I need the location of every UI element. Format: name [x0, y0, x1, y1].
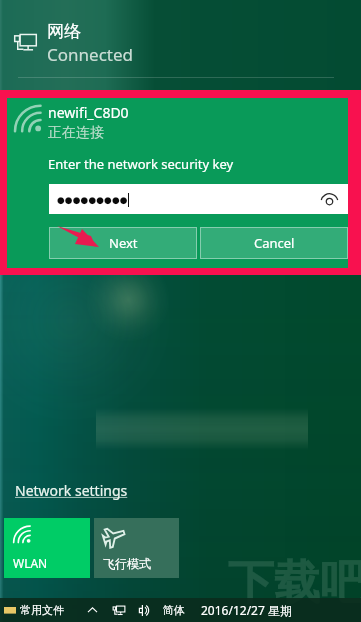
staticText: Next	[109, 234, 138, 252]
other: Network	[12, 28, 39, 55]
button[interactable]: Cancel	[200, 227, 348, 259]
other: Wi-Fi	[13, 525, 35, 547]
button[interactable]: Files	[4, 603, 64, 617]
staticText: 下载吧	[228, 554, 361, 612]
other: Wi-Fi	[14, 104, 48, 138]
staticText: newifi_C8D0	[48, 103, 129, 122]
staticText: 简体	[163, 603, 185, 617]
button[interactable]: Volume	[137, 603, 152, 618]
button[interactable]: Next	[49, 227, 197, 259]
button[interactable]: Wi-Fi	[4, 518, 90, 578]
staticText: WLAN	[13, 555, 48, 571]
button[interactable]: Network settings	[15, 481, 128, 500]
button[interactable]: Network status	[112, 603, 126, 617]
button[interactable]: Network	[0, 0, 361, 90]
other: Airplane mode	[103, 525, 125, 547]
other: Show password	[321, 191, 338, 208]
staticText: 飞行模式	[103, 556, 151, 571]
staticText: Connected	[47, 43, 133, 66]
button[interactable]: Airplane mode	[94, 518, 179, 578]
button[interactable]: Show hidden icons	[86, 604, 99, 617]
staticText: 正在连接	[48, 124, 104, 142]
button[interactable]: ●●●●●●●●●	[49, 184, 348, 214]
staticText: Cancel	[254, 234, 295, 252]
staticText: 网络	[47, 21, 81, 42]
staticText: 常用文件	[20, 603, 64, 617]
other: Files	[4, 604, 16, 616]
staticText: ●●●●●●●●●	[57, 195, 128, 205]
staticText: 2016/12/27 星期	[201, 602, 292, 618]
button[interactable]: Wi-Fi	[7, 98, 348, 268]
staticText: Enter the network security key	[48, 155, 234, 173]
